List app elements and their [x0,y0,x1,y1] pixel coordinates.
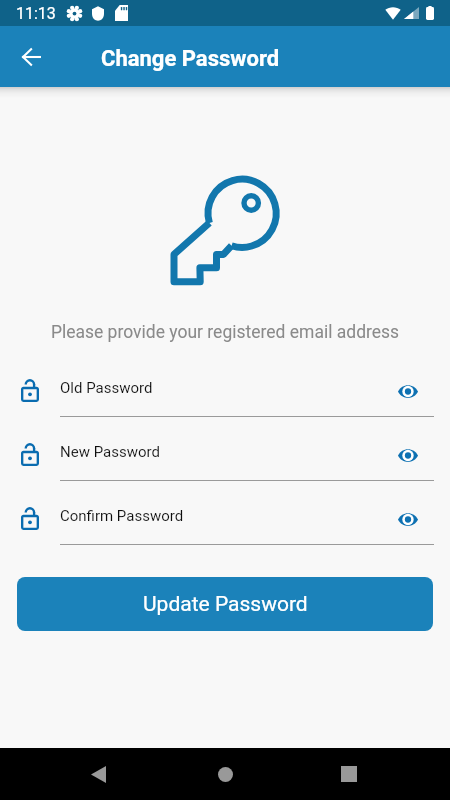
button[interactable]: Recents [327,752,371,796]
staticText: Please provide your registered email add… [0,322,450,343]
button[interactable]: Old Password [0,365,450,416]
button[interactable]: Show password [392,503,424,535]
button[interactable]: Home [203,752,247,796]
button[interactable]: New Password [0,429,450,480]
staticText: Update Password [143,592,308,617]
button[interactable]: Back [76,752,120,796]
button[interactable]: Show password [392,375,424,407]
button[interactable]: Back [9,35,53,79]
button[interactable]: Confirm Password [0,493,450,544]
staticText: Change Password [101,46,280,72]
staticText: 11:13 [16,4,56,23]
staticText: Old Password [60,379,402,397]
button[interactable]: Show password [392,439,424,471]
button[interactable]: Update Password [17,577,433,631]
staticText: Confirm Password [60,507,402,525]
staticText: New Password [60,443,402,461]
